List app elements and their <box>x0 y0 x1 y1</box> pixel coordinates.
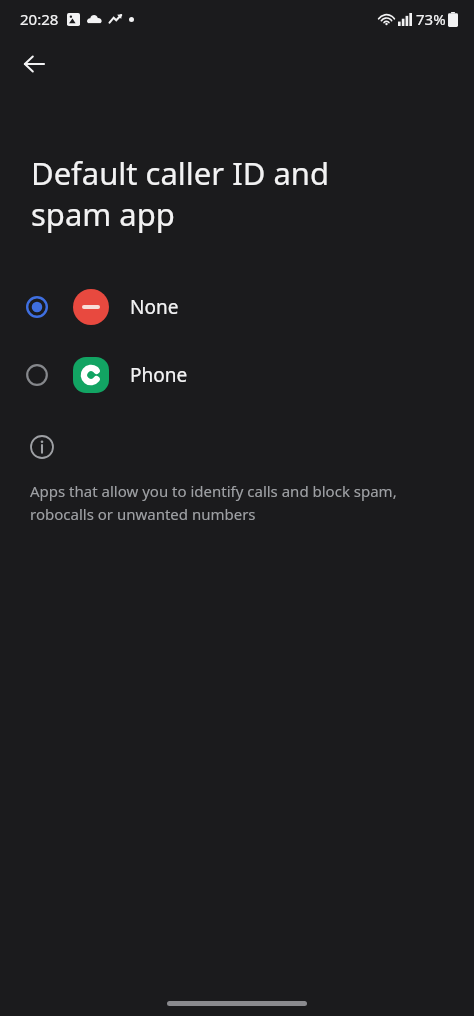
button[interactable]: Information <box>26 431 58 463</box>
staticText: 20:28 <box>20 9 59 29</box>
staticText: Default caller ID and spam app <box>31 152 416 235</box>
staticText: Phone <box>130 362 188 388</box>
staticText: Apps that allow you to identify calls an… <box>30 481 434 524</box>
staticText: None <box>130 294 179 320</box>
button[interactable]: None <box>0 273 474 341</box>
button[interactable]: Back <box>8 38 60 90</box>
staticText: 73% <box>416 9 446 29</box>
button[interactable]: Phone <box>0 341 474 409</box>
